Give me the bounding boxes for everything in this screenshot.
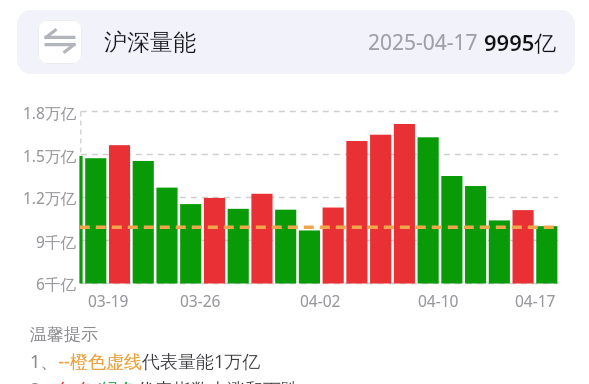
staticText: 04-17 [515,290,556,311]
staticText: 2、红色/绿色代表指数上涨和下跌 [30,377,299,384]
staticText: 2025-04-17 [368,28,484,57]
staticText: 沪深量能 [104,28,196,57]
staticText: 03-19 [88,290,129,311]
staticText: 1.5万亿 [23,145,76,166]
staticText: 9995亿 [484,27,557,57]
staticText: 1、--橙色虚线代表量能1万亿 [30,349,261,374]
staticText: 1.8万亿 [23,102,76,123]
staticText: 04-10 [418,290,459,311]
staticText: 04-02 [300,290,341,311]
staticText: 6千亿 [36,273,76,294]
staticText: 03-26 [180,290,221,311]
button[interactable]: 沪深量能 [17,10,575,74]
staticText: 温馨提示 [30,324,98,345]
staticText: 9千亿 [36,231,76,252]
staticText: 1.2万亿 [23,187,76,208]
